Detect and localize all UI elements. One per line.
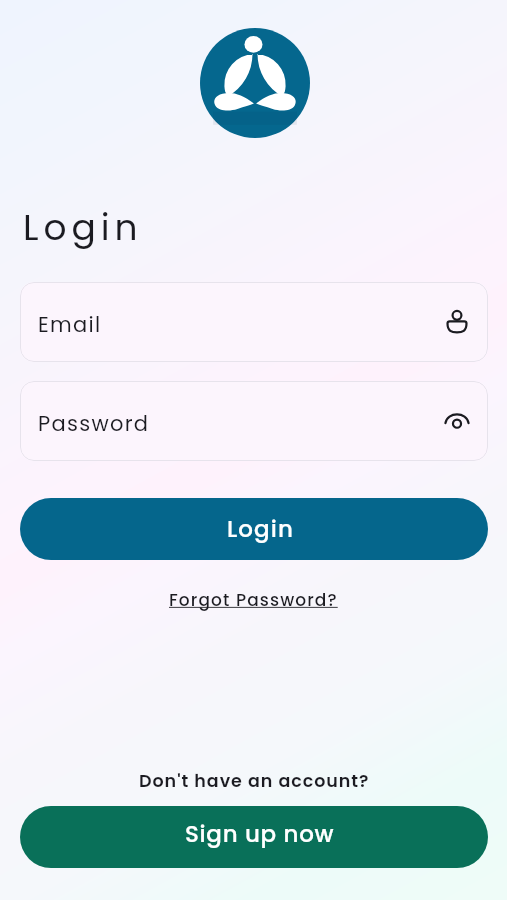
staticText: Sign up now xyxy=(185,818,335,850)
staticText: Login xyxy=(23,202,143,252)
staticText: Email xyxy=(38,310,102,339)
staticText: Don't have an account? xyxy=(139,769,370,794)
button[interactable]: Password xyxy=(20,381,488,461)
staticText: Forgot Password? xyxy=(169,588,338,612)
other: Account xyxy=(444,309,470,335)
staticText: Password xyxy=(38,409,150,438)
other: Show password xyxy=(444,408,470,434)
button[interactable]: Sign up now xyxy=(20,806,488,868)
button[interactable]: Forgot Password? xyxy=(161,585,346,615)
button[interactable]: Email xyxy=(20,282,488,362)
button[interactable]: Login xyxy=(20,498,488,560)
staticText: Login xyxy=(227,513,294,545)
